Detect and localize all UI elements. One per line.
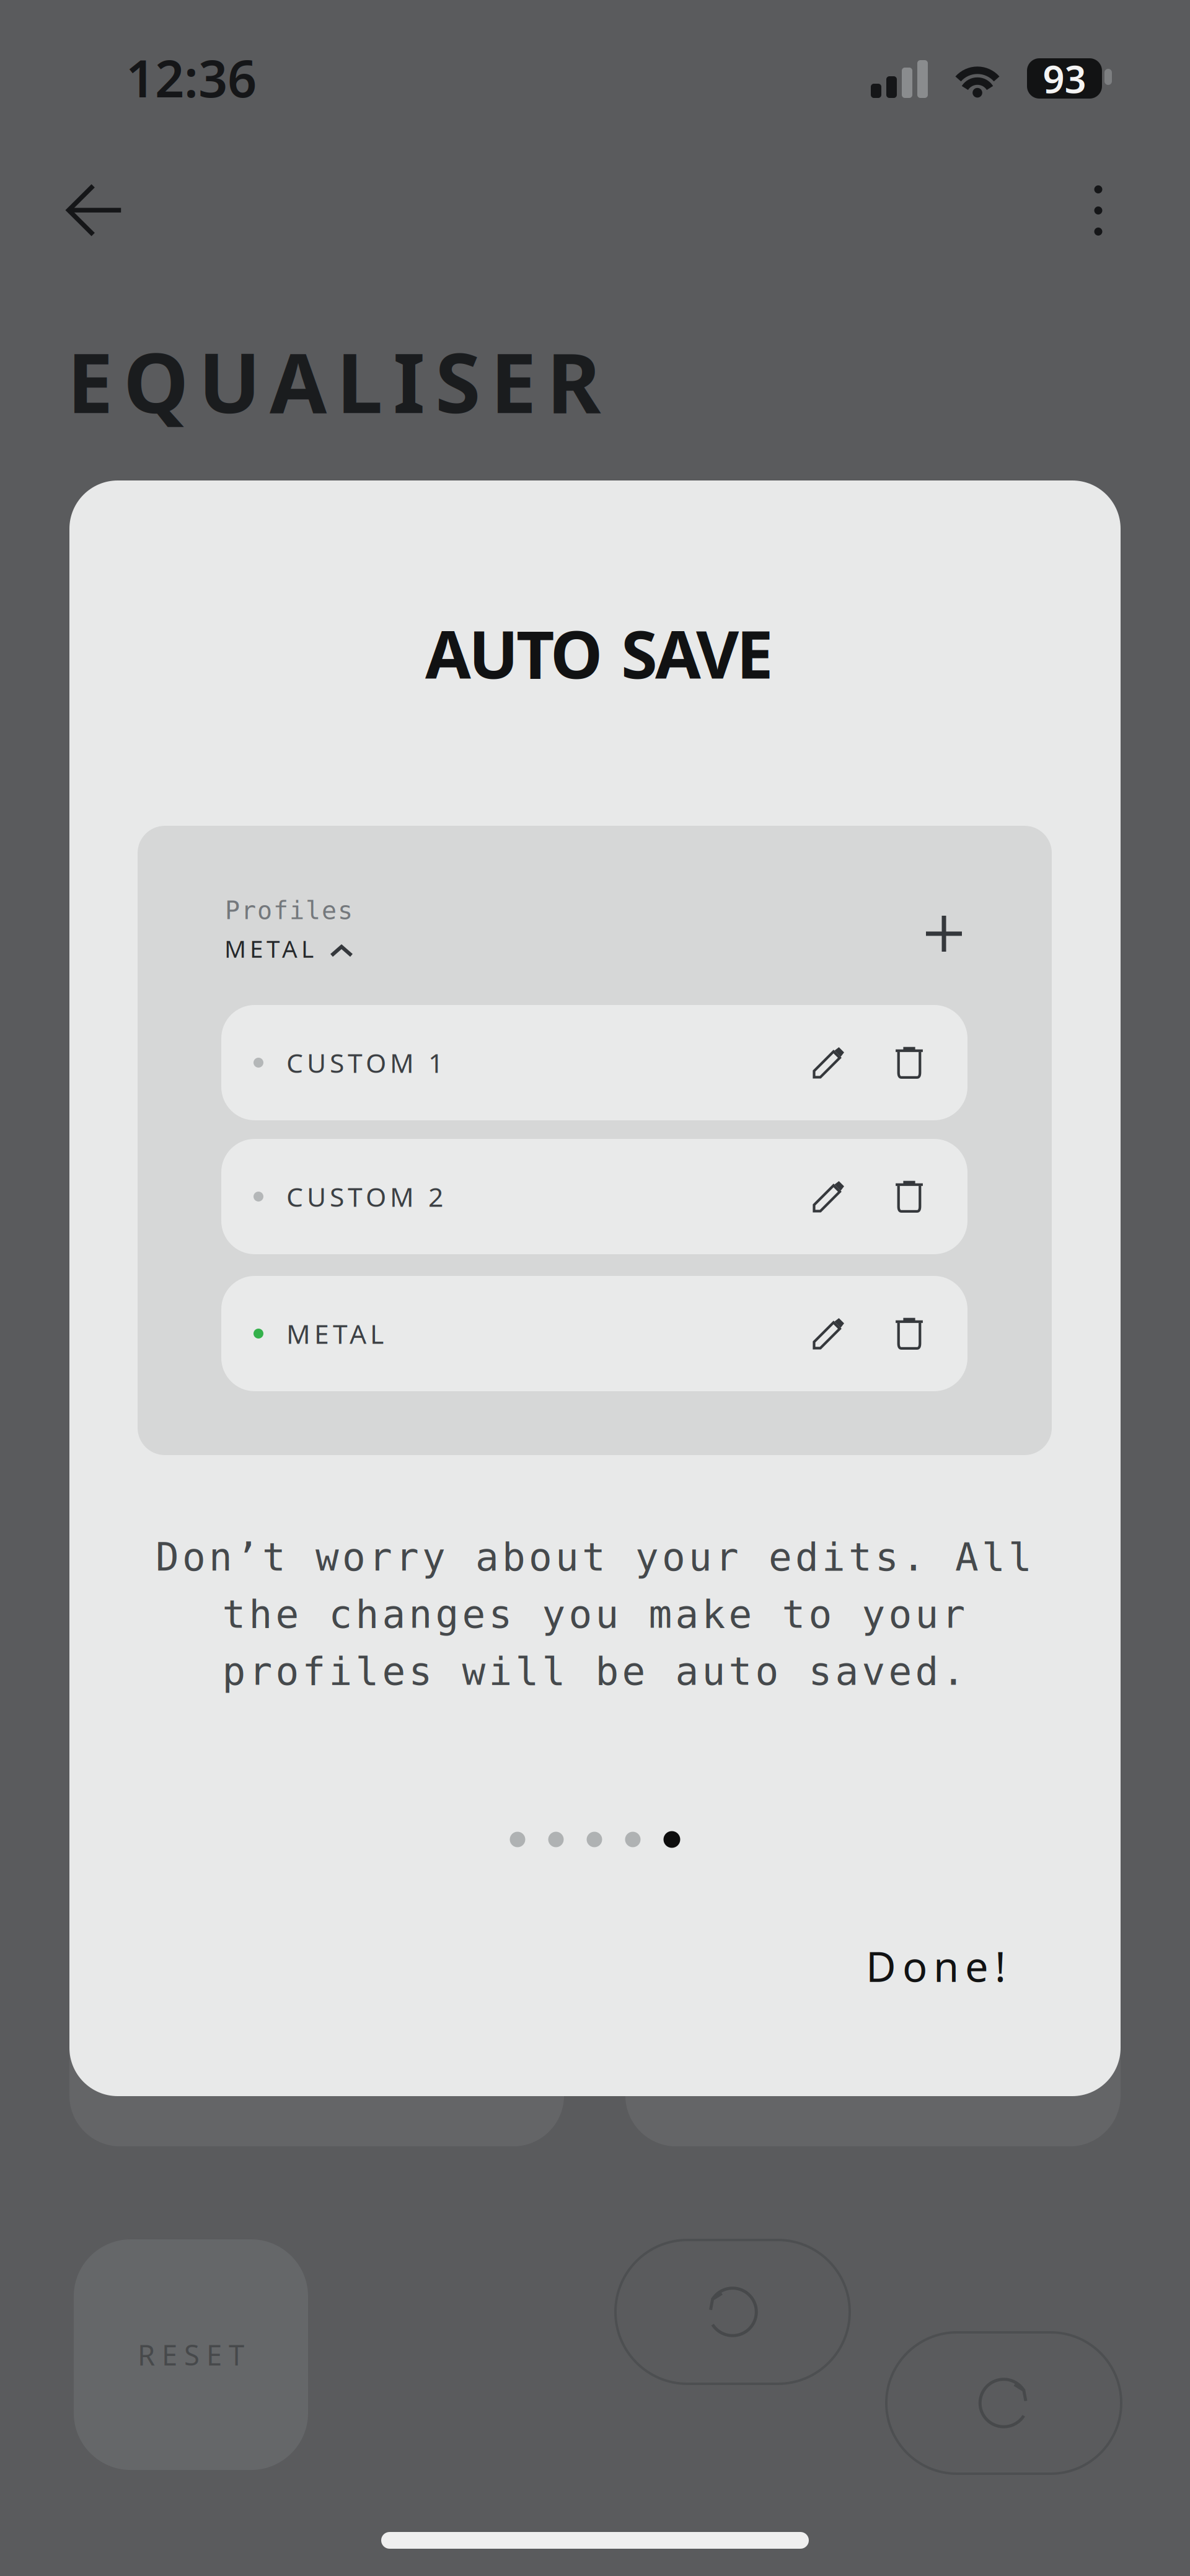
button[interactable]: RESET [74,2239,308,2470]
button[interactable]: Done! [866,1936,1033,1996]
staticText: EQUALISER [67,326,601,436]
staticText: the changes you make to your [222,1592,965,1636]
button[interactable]: CUSTOM 1 [221,1005,967,1120]
staticText: METAL [286,1316,384,1351]
button[interactable]: Back [66,184,123,237]
button[interactable]: More options [1083,185,1113,236]
staticText: AUTO [425,609,602,697]
button[interactable]: Undo [615,2240,850,2384]
staticText: 12:36 [126,43,257,111]
button[interactable]: METAL [221,1276,967,1391]
button[interactable]: CUSTOM 2 [221,1139,967,1254]
staticText: Done! [866,1938,1006,1993]
button[interactable]: Redo [886,2332,1121,2474]
staticText: Don’t worry about your edits. All [156,1535,1032,1579]
staticText: CUSTOM 1 [286,1045,443,1080]
staticText: METAL [224,932,314,964]
staticText: RESET [138,2336,244,2373]
staticText: 93 [1043,53,1086,104]
staticText: CUSTOM 2 [286,1179,443,1214]
staticText: Profiles [225,896,353,925]
staticText: profiles will be auto saved. [222,1649,965,1693]
staticText: SAVE [621,609,773,697]
button[interactable]: Add profile [926,916,962,952]
